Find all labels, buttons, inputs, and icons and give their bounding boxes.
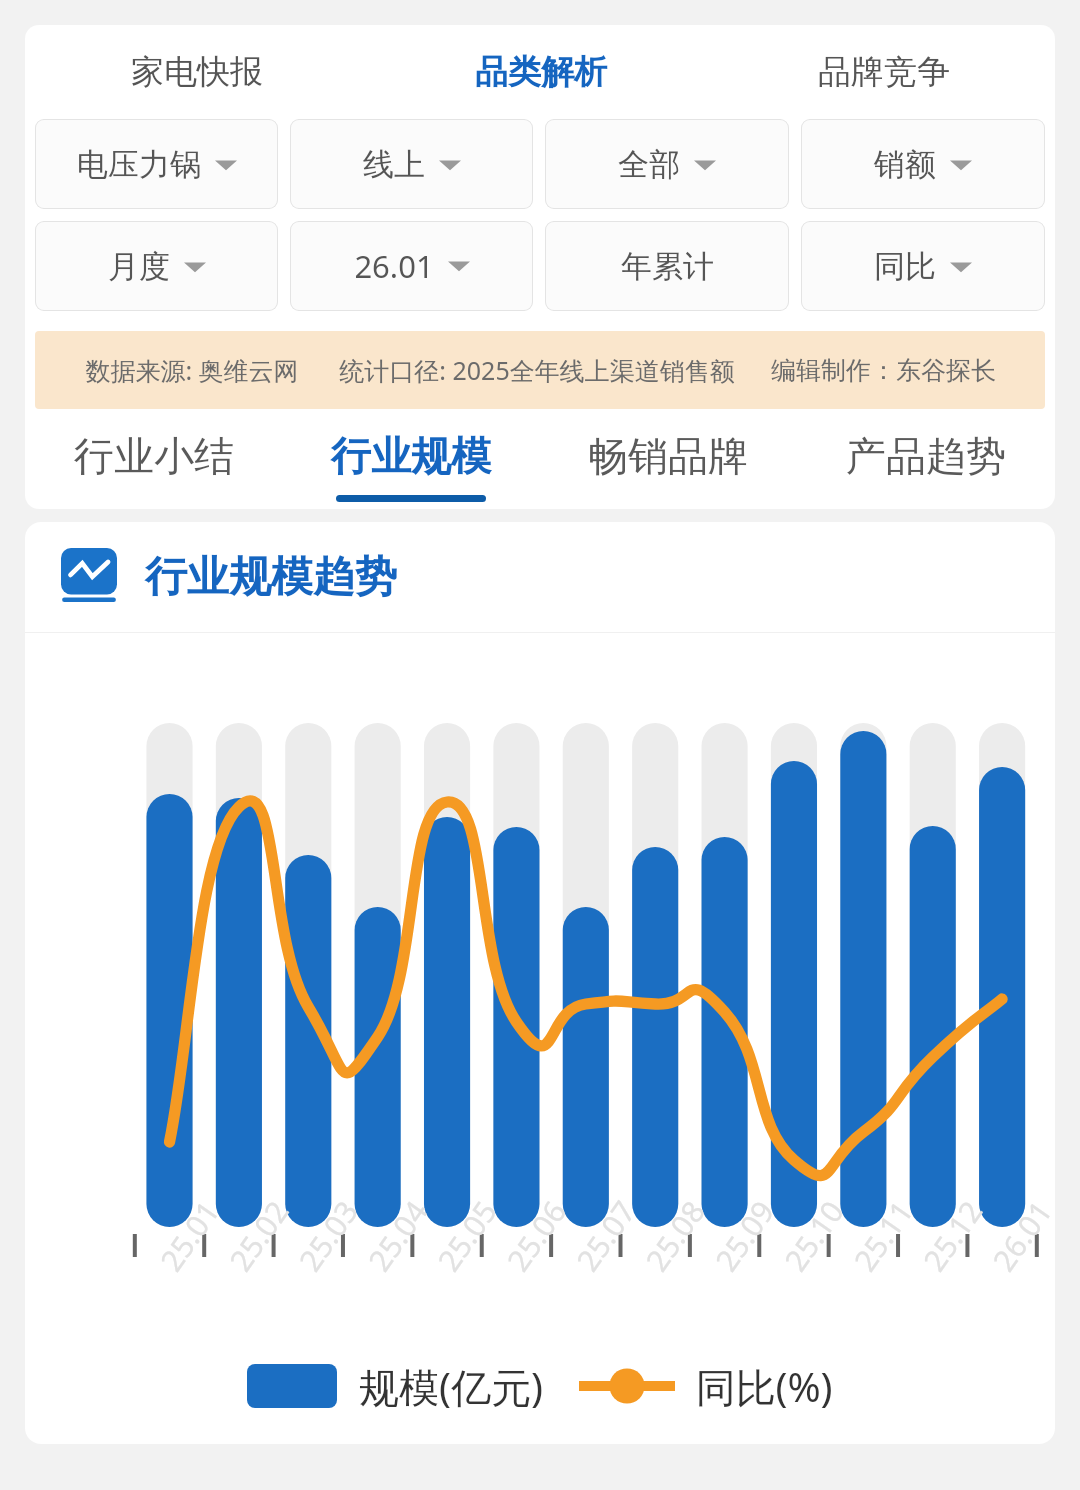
staticText: 家电快报 — [131, 51, 263, 93]
staticText: 行业规模趋势 — [145, 551, 397, 604]
button[interactable]: 品牌竞争 — [712, 25, 1055, 119]
button[interactable]: 行业小结 — [25, 409, 282, 509]
staticText: 销额 — [874, 145, 936, 184]
button[interactable]: 月度 — [35, 221, 278, 311]
staticText: 同比(%) — [695, 1359, 833, 1414]
staticText: 品类解析 — [475, 51, 607, 93]
staticText: 统计口径: 2025全年线上渠道销售额 — [339, 353, 735, 387]
staticText: 行业规模 — [331, 431, 491, 481]
button[interactable]: 产品趋势 — [797, 409, 1055, 509]
staticText: 电压力锅 — [77, 145, 201, 184]
button[interactable]: 家电快报 — [25, 25, 369, 119]
staticText: 畅销品牌 — [588, 431, 748, 481]
button[interactable]: 行业规模 — [282, 409, 539, 509]
staticText: 数据来源: 奥维云网 — [85, 353, 299, 387]
button[interactable]: 畅销品牌 — [539, 409, 797, 509]
staticText: 月度 — [108, 247, 170, 286]
button[interactable]: 年累计 — [545, 221, 789, 311]
button[interactable]: 电压力锅 — [35, 119, 278, 209]
staticText: 产品趋势 — [846, 431, 1006, 481]
staticText: 年累计 — [621, 247, 714, 286]
staticText: 编辑制作：东谷探长 — [771, 355, 996, 386]
staticText: 同比 — [874, 247, 936, 286]
staticText: 线上 — [363, 145, 425, 184]
button[interactable]: 销额 — [801, 119, 1045, 209]
staticText: 行业小结 — [74, 431, 234, 481]
button[interactable]: 同比 — [801, 221, 1045, 311]
button[interactable]: 全部 — [545, 119, 789, 209]
staticText: 品牌竞争 — [818, 51, 950, 93]
button[interactable]: 品类解析 — [369, 25, 712, 119]
staticText: 规模(亿元) — [359, 1359, 543, 1414]
button[interactable]: 26.01 — [290, 221, 533, 311]
button[interactable]: 线上 — [290, 119, 533, 209]
staticText: 全部 — [618, 145, 680, 184]
staticText: 26.01 — [354, 245, 434, 287]
